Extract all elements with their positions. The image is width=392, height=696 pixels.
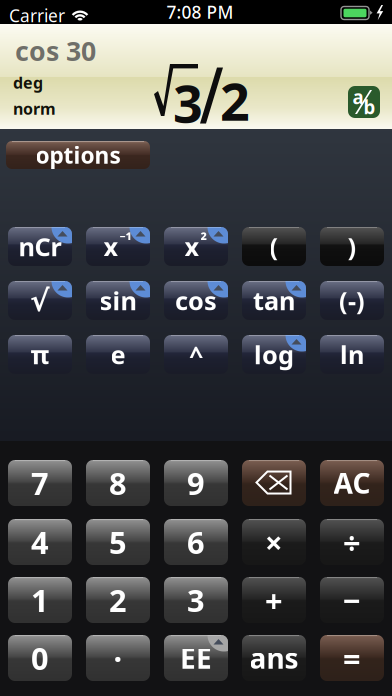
button[interactable]: 6: [164, 519, 228, 565]
staticText: 7:08 PM: [166, 0, 233, 23]
button[interactable]: x: [86, 227, 150, 266]
button[interactable]: √: [8, 281, 72, 320]
staticText: 1: [31, 580, 49, 620]
staticText: tan: [253, 284, 295, 317]
button[interactable]: log: [242, 335, 306, 374]
staticText: (: [269, 230, 278, 263]
button[interactable]: ^: [164, 335, 228, 374]
button[interactable]: ln: [320, 335, 384, 374]
staticText: (-): [339, 284, 365, 317]
staticText: options: [35, 140, 120, 170]
staticText: 3: [173, 68, 203, 137]
staticText: ^: [189, 338, 203, 371]
staticText: ²: [200, 229, 207, 252]
staticText: e: [110, 338, 125, 371]
staticText: 2: [220, 66, 250, 135]
button[interactable]: 2: [86, 577, 150, 623]
button[interactable]: ×: [242, 519, 306, 565]
staticText: ⁻¹: [119, 229, 132, 252]
staticText: ×: [265, 522, 283, 562]
staticText: sin: [99, 284, 136, 317]
button[interactable]: tan: [242, 281, 306, 320]
staticText: EE: [180, 639, 212, 677]
staticText: 8: [109, 463, 127, 503]
staticText: Carrier: [9, 4, 65, 27]
button[interactable]: 7: [8, 460, 72, 506]
button[interactable]: 1: [8, 577, 72, 623]
staticText: norm: [13, 98, 56, 119]
staticText: a: [352, 85, 363, 109]
staticText: 6: [187, 522, 205, 562]
button[interactable]: +: [242, 577, 306, 623]
button[interactable]: AC: [320, 460, 384, 506]
staticText: log: [254, 338, 294, 371]
button[interactable]: 4: [8, 519, 72, 565]
staticText: b: [363, 95, 375, 119]
staticText: 5: [109, 522, 127, 562]
button[interactable]: π: [8, 335, 72, 374]
staticText: ): [347, 230, 356, 263]
button[interactable]: =: [320, 635, 384, 681]
button[interactable]: Delete: [242, 460, 306, 506]
staticText: x: [103, 230, 118, 263]
staticText: 4: [31, 522, 49, 562]
button[interactable]: nCr: [8, 227, 72, 266]
button[interactable]: EE: [164, 635, 228, 681]
button[interactable]: (-): [320, 281, 384, 320]
button[interactable]: ·: [86, 635, 150, 681]
staticText: √: [30, 284, 50, 317]
button[interactable]: ): [320, 227, 384, 266]
staticText: 2: [109, 580, 127, 620]
staticText: 0: [31, 638, 49, 678]
button[interactable]: Fraction form: [348, 86, 380, 118]
staticText: x: [184, 230, 199, 263]
staticText: ln: [340, 338, 364, 371]
button[interactable]: cos: [164, 281, 228, 320]
button[interactable]: 0: [8, 635, 72, 681]
staticText: nCr: [18, 230, 61, 263]
button[interactable]: 8: [86, 460, 150, 506]
button[interactable]: (: [242, 227, 306, 266]
staticText: AC: [333, 464, 370, 502]
staticText: 7: [31, 463, 49, 503]
staticText: 3: [187, 580, 205, 620]
staticText: cos 30: [15, 33, 96, 68]
button[interactable]: ÷: [320, 519, 384, 565]
staticText: π: [30, 338, 49, 371]
button[interactable]: x: [164, 227, 228, 266]
button[interactable]: sin: [86, 281, 150, 320]
staticText: −: [343, 580, 361, 620]
button[interactable]: e: [86, 335, 150, 374]
staticText: ÷: [343, 522, 361, 562]
staticText: =: [343, 638, 361, 678]
staticText: ·: [113, 638, 122, 678]
button[interactable]: 5: [86, 519, 150, 565]
button[interactable]: −: [320, 577, 384, 623]
staticText: ans: [249, 639, 298, 677]
button[interactable]: 3: [164, 577, 228, 623]
staticText: 9: [187, 463, 205, 503]
button[interactable]: options: [6, 141, 150, 169]
staticText: cos: [175, 284, 217, 317]
staticText: +: [265, 580, 283, 620]
button[interactable]: 9: [164, 460, 228, 506]
button[interactable]: ans: [242, 635, 306, 681]
staticText: deg: [13, 72, 43, 93]
